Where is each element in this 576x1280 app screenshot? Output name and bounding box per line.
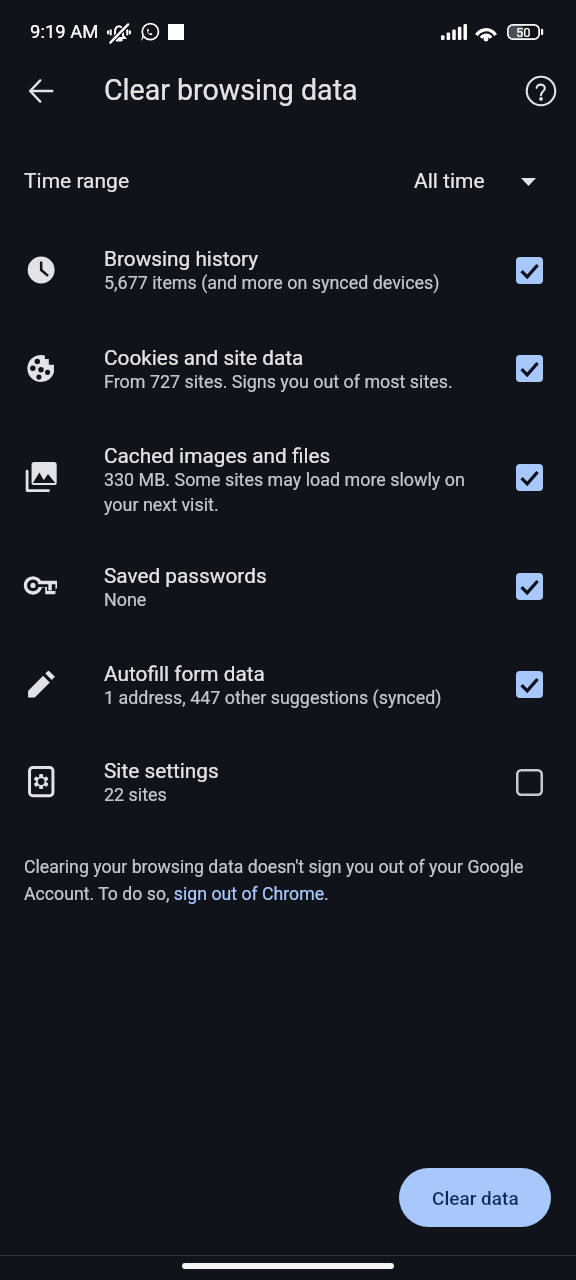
staticText: Clear browsing data [104, 73, 358, 107]
staticText: 5,677 items (and more on synced devices) [104, 272, 440, 293]
staticText: 22 sites [104, 784, 167, 805]
button[interactable]: Cookies and site data, checked [509, 348, 550, 389]
staticText: All time [414, 169, 485, 194]
staticText: Browsing history [104, 247, 259, 271]
button[interactable]: Time range [0, 150, 576, 212]
button[interactable]: Clear data [399, 1168, 551, 1227]
button[interactable]: Cookies and site data [0, 328, 576, 408]
button[interactable]: Help and feedback [517, 67, 565, 115]
button[interactable]: Saved passwords, checked [509, 566, 550, 607]
staticText: 330 MB. Some sites may load more slowly … [104, 469, 476, 515]
staticText: 9:19 AM [30, 21, 99, 43]
staticText: Cookies and site data [104, 346, 304, 370]
button[interactable]: Browsing history [0, 230, 576, 310]
button[interactable]: Site settings, unchecked [509, 762, 550, 803]
staticText: Cached images and files [104, 444, 331, 468]
button[interactable]: Browsing history, checked [509, 250, 550, 291]
staticText: Clearing your browsing data doesn't sign… [24, 857, 544, 904]
staticText: Autofill form data [104, 662, 265, 686]
staticText: 50 [516, 25, 531, 40]
button[interactable]: Cached images and files [0, 424, 576, 530]
staticText: Site settings [104, 759, 219, 783]
staticText: Time range [24, 169, 130, 194]
button[interactable]: Autofill form data [0, 644, 576, 724]
staticText: From 727 sites. Signs you out of most si… [104, 371, 453, 392]
button[interactable]: Navigate up [17, 67, 65, 115]
button[interactable]: Autofill form data, checked [509, 664, 550, 705]
staticText: 1 address, 447 other suggestions (synced… [104, 687, 442, 708]
button[interactable]: Saved passwords [0, 546, 576, 626]
button[interactable]: Cached images and files, checked [509, 457, 550, 498]
staticText: None [104, 589, 147, 610]
staticText: Clear data [432, 1187, 519, 1209]
button[interactable]: Site settings [0, 742, 576, 822]
staticText: Saved passwords [104, 564, 267, 588]
